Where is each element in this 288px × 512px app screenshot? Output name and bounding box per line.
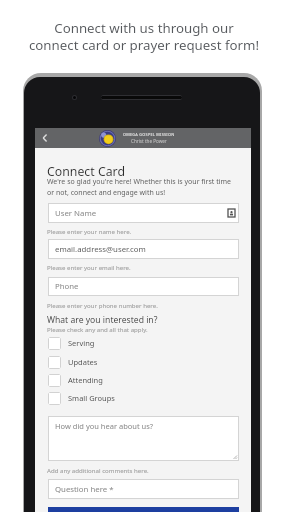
staticText: Connect with us through our connect card… (0, 19, 288, 54)
staticText: Please enter your phone number here. (47, 301, 158, 309)
button[interactable]: Phone (48, 277, 239, 296)
button[interactable]: How did you hear about us? (48, 416, 239, 461)
staticText: Please check any and all that apply. (47, 325, 148, 333)
button[interactable]: Question here * (48, 479, 239, 499)
staticText: Serving (68, 338, 95, 348)
staticText: Add any additional comments here. (47, 466, 149, 474)
staticText: User Name (55, 208, 97, 219)
button[interactable]: Attending (48, 371, 239, 389)
staticText: Connect Card (47, 163, 125, 180)
staticText: OMEGA GOSPEL MISSION (123, 132, 175, 137)
staticText: Updates (68, 357, 98, 367)
button[interactable]: Updates (48, 353, 239, 371)
staticText: Phone (55, 281, 79, 292)
staticText: How did you hear about us? (55, 421, 154, 431)
button[interactable]: Back (35, 128, 55, 148)
button[interactable]: email.address@user.com (48, 239, 239, 259)
staticText: Attending (68, 375, 103, 385)
staticText: We're so glad you're here! Whether this … (47, 177, 231, 197)
staticText: email.address@user.com (55, 244, 146, 255)
staticText: Christ the Power (131, 138, 167, 144)
staticText: Please enter your name here. (47, 227, 132, 235)
staticText: Small Groups (68, 393, 115, 403)
staticText: What are you interested in? (47, 314, 158, 326)
staticText: Question here * (55, 484, 114, 495)
button[interactable]: User Name (48, 203, 239, 223)
button[interactable]: Small Groups (48, 389, 239, 407)
staticText: Please enter your email here. (47, 263, 131, 271)
button[interactable]: Serving (48, 334, 239, 352)
